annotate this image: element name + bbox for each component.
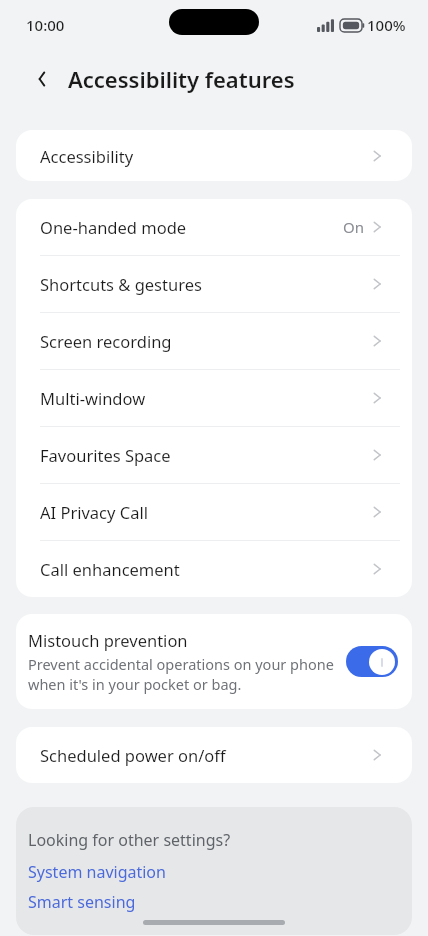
staticText: 100% <box>367 15 406 35</box>
button[interactable]: Call enhancement <box>28 541 400 597</box>
staticText: Call enhancement <box>40 558 180 580</box>
staticText: Scheduled power on/off <box>40 744 226 766</box>
staticText: Shortcuts & gestures <box>40 273 202 295</box>
button[interactable]: Favourites Space <box>28 427 400 483</box>
staticText: Multi-window <box>40 387 146 409</box>
staticText: Favourites Space <box>40 444 171 466</box>
staticText: On <box>343 217 364 237</box>
button[interactable]: AI Privacy Call <box>28 484 400 540</box>
staticText: 10:00 <box>26 15 65 35</box>
staticText: Looking for other settings? <box>28 829 231 851</box>
button[interactable]: System navigation <box>28 861 166 883</box>
staticText: Accessibility <box>40 145 134 167</box>
button[interactable]: Back <box>26 62 60 96</box>
staticText: Mistouch prevention <box>28 629 188 651</box>
button[interactable]: Accessibility <box>28 130 400 181</box>
staticText: AI Privacy Call <box>40 501 148 523</box>
staticText: System navigation <box>28 861 166 883</box>
button[interactable]: Shortcuts & gestures <box>28 256 400 312</box>
button[interactable]: Multi-window <box>28 370 400 426</box>
staticText: Prevent accidental operations on your ph… <box>28 654 336 694</box>
button[interactable]: Mistouch prevention <box>16 614 412 709</box>
button[interactable]: Scheduled power on/off <box>28 727 400 783</box>
staticText: Accessibility features <box>68 64 295 94</box>
staticText: Smart sensing <box>28 891 136 913</box>
button[interactable]: Mistouch prevention toggle <box>346 646 398 677</box>
button[interactable]: One-handed mode <box>28 199 400 255</box>
staticText: One-handed mode <box>40 216 187 238</box>
button[interactable]: Screen recording <box>28 313 400 369</box>
button[interactable]: Smart sensing <box>28 891 136 913</box>
staticText: Screen recording <box>40 330 172 352</box>
